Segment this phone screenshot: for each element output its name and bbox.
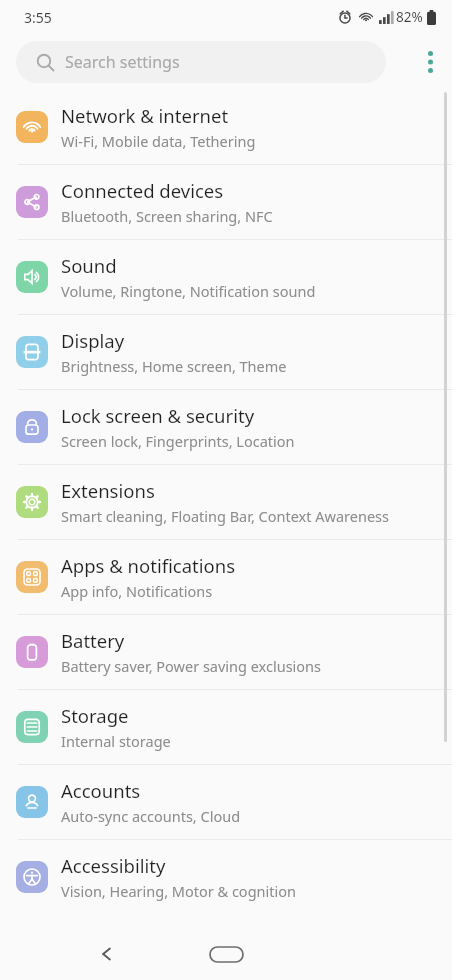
button[interactable]: Lock screen & security — [0, 390, 452, 464]
staticText: Brightness, Home screen, Theme — [61, 356, 287, 376]
button[interactable]: Sound — [0, 240, 452, 314]
staticText: Internal storage — [61, 731, 171, 751]
staticText: Auto-sync accounts, Cloud — [61, 806, 241, 826]
staticText: Sound — [61, 253, 117, 278]
staticText: Battery saver, Power saving exclusions — [61, 656, 322, 676]
staticText: 3:55 — [24, 8, 52, 27]
staticText: Search settings — [65, 51, 180, 73]
staticText: Wi-Fi, Mobile data, Tethering — [61, 131, 256, 151]
staticText: Accounts — [61, 778, 141, 803]
button[interactable]: Apps & notifications — [0, 540, 452, 614]
button[interactable]: Back — [84, 931, 130, 977]
button[interactable]: Display — [0, 315, 452, 389]
button[interactable]: Storage — [0, 690, 452, 764]
button[interactable]: Extensions — [0, 465, 452, 539]
button[interactable]: More options — [408, 40, 452, 84]
button[interactable]: Network & internet — [0, 90, 452, 164]
staticText: Lock screen & security — [61, 403, 255, 428]
button[interactable]: Accessibility — [0, 840, 452, 914]
staticText: Display — [61, 328, 125, 353]
button[interactable]: Search settings — [16, 41, 386, 83]
staticText: Accessibility — [61, 853, 166, 878]
staticText: Battery — [61, 628, 125, 653]
staticText: App info, Notifications — [61, 581, 213, 601]
staticText: Apps & notifications — [61, 553, 236, 578]
staticText: Storage — [61, 703, 129, 728]
button[interactable]: Home — [200, 934, 252, 974]
button[interactable]: Battery — [0, 615, 452, 689]
staticText: Volume, Ringtone, Notification sound — [61, 281, 316, 301]
staticText: Smart cleaning, Floating Bar, Context Aw… — [61, 506, 389, 526]
staticText: Network & internet — [61, 103, 229, 128]
staticText: Extensions — [61, 478, 155, 503]
button[interactable]: Connected devices — [0, 165, 452, 239]
button[interactable]: Accounts — [0, 765, 452, 839]
staticText: Connected devices — [61, 178, 224, 203]
staticText: Screen lock, Fingerprints, Location — [61, 431, 295, 451]
staticText: Vision, Hearing, Motor & cognition — [61, 881, 296, 901]
staticText: 82% — [396, 8, 423, 26]
staticText: Bluetooth, Screen sharing, NFC — [61, 206, 273, 226]
